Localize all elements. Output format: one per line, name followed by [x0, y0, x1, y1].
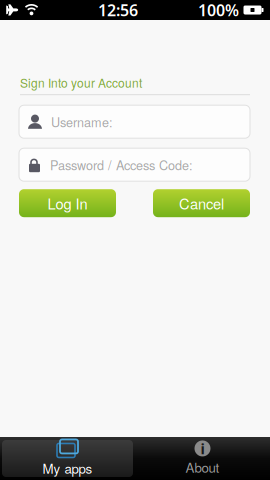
staticText: Cancel: [179, 193, 224, 214]
staticText: Sign Into your Account: [20, 74, 142, 91]
button[interactable]: My apps: [0, 437, 135, 480]
staticText: About: [185, 457, 219, 477]
staticText: Username:: [51, 113, 113, 131]
staticText: My apps: [42, 458, 92, 478]
button[interactable]: i: [135, 437, 270, 480]
staticText: Password / Access Code:: [50, 156, 193, 174]
button[interactable]: Password / Access Code:: [19, 148, 250, 181]
button[interactable]: Cancel: [153, 189, 250, 217]
staticText: 12:56: [98, 0, 138, 21]
staticText: Log In: [47, 193, 87, 214]
button[interactable]: Username:: [19, 105, 250, 138]
staticText: 100%: [198, 0, 239, 21]
staticText: i: [200, 439, 204, 458]
button[interactable]: Log In: [19, 189, 116, 217]
